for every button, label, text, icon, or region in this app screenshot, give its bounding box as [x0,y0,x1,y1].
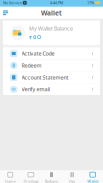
staticText: My Wallet Balance [29,25,73,32]
staticText: Home [5,179,16,183]
staticText: Privilege [23,179,38,183]
button[interactable]: Refresh balance [37,35,41,39]
button[interactable]: Home [0,170,21,183]
button[interactable]: Privilege [21,170,41,183]
button[interactable]: Pay [62,170,82,183]
button[interactable]: Menu [0,7,11,18]
staticText: Wallet [41,8,62,17]
button[interactable]: Verify email [3,83,100,95]
staticText: Redeem [44,179,58,183]
button[interactable]: Activate Code [3,48,100,59]
staticText: No Service [3,0,22,5]
staticText: 17% [87,0,94,5]
staticText: Account Statement [21,74,68,81]
button[interactable]: Account Statement [3,72,100,83]
staticText: Activate Code [21,50,54,57]
staticText: Wallet [87,179,98,183]
staticText: Pay [69,179,75,183]
staticText: 4:44 PM [50,0,64,5]
staticText: Verify email [21,86,49,93]
button[interactable]: Redeem [3,60,100,71]
staticText: ₹ 0 [29,33,36,41]
staticText: Redeem [21,62,41,69]
button[interactable]: Wallet [82,170,103,183]
button[interactable]: Redeem [41,170,62,183]
